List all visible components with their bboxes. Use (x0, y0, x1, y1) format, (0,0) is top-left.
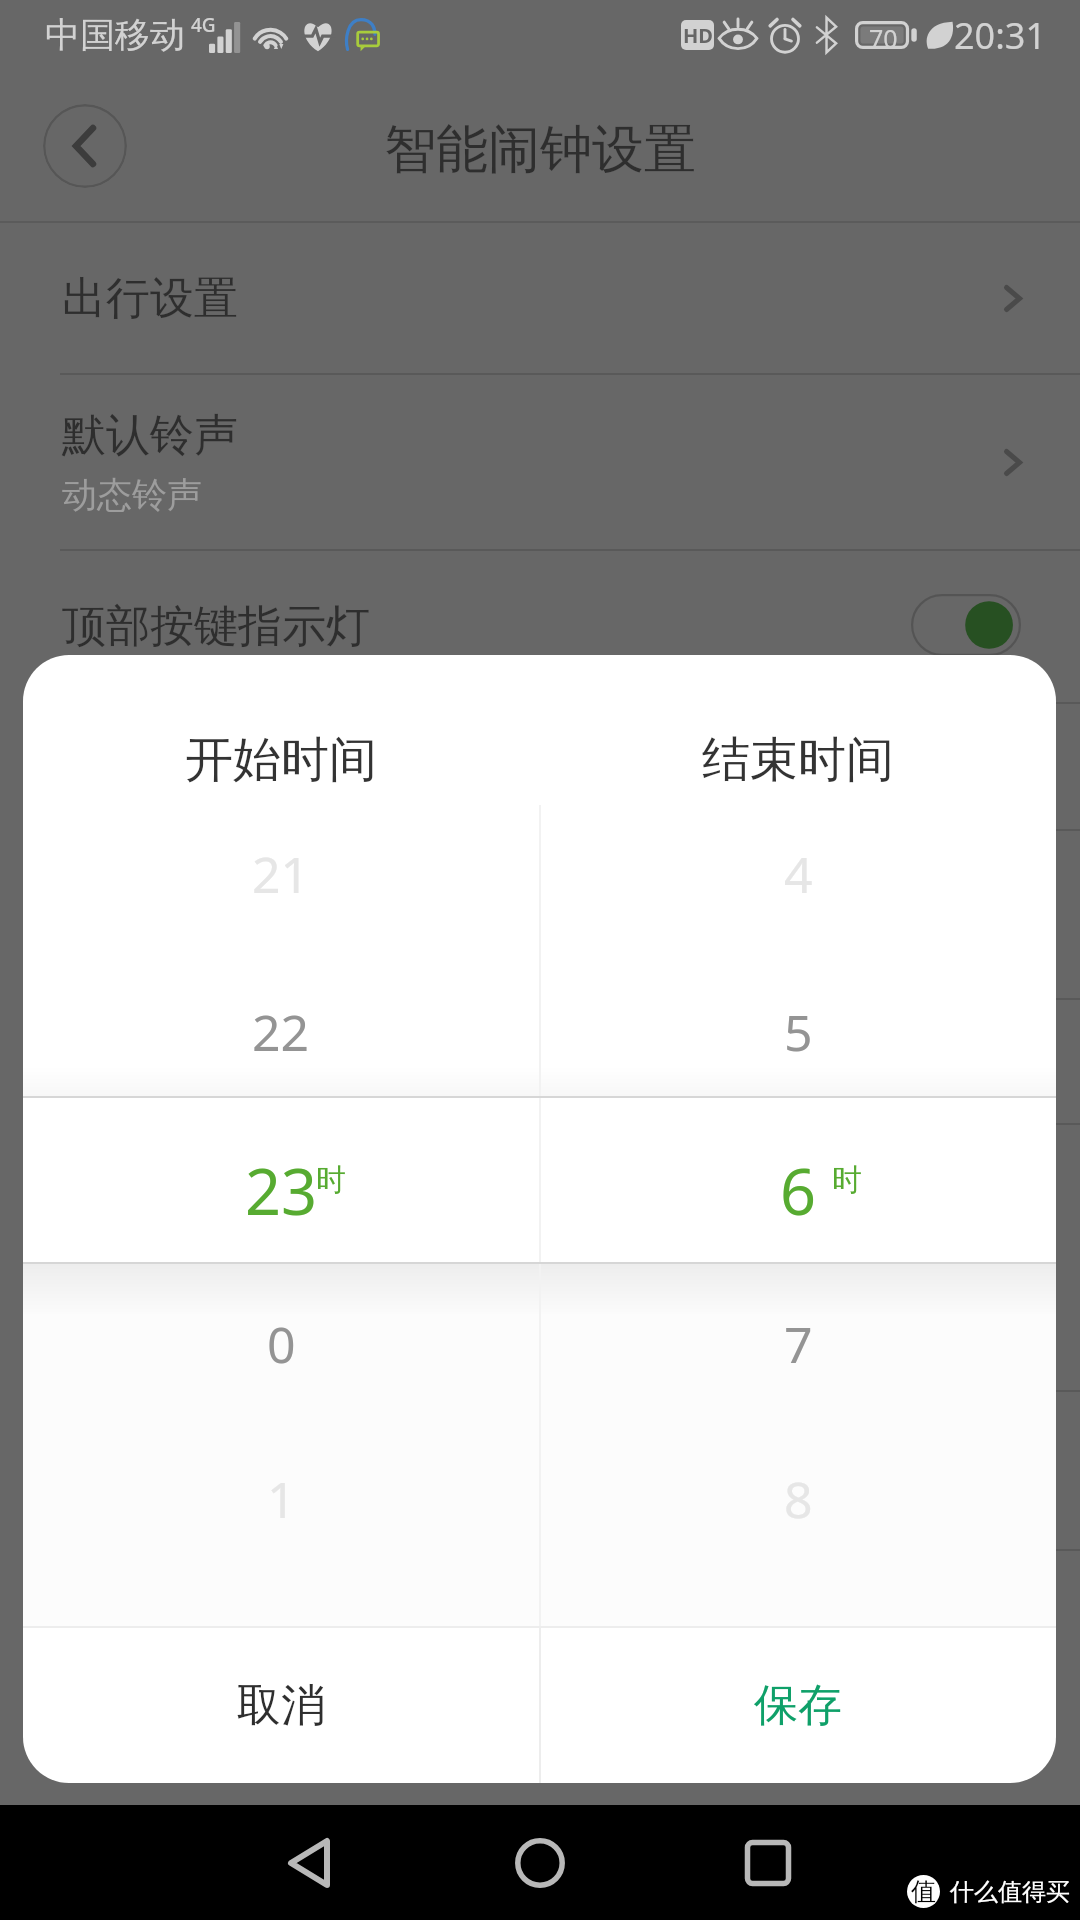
staticText: 5 (784, 998, 813, 1066)
staticText: 什么值得买 (950, 1877, 1070, 1907)
staticText: 8 (784, 1465, 813, 1533)
staticText: 顶部按键指示灯 (62, 599, 370, 654)
button[interactable]: 出行设置 (0, 223, 1080, 373)
staticText: 屏幕亮度 (62, 1230, 238, 1285)
staticText: 23 (245, 1148, 318, 1234)
button[interactable]: Home (500, 1805, 580, 1920)
staticText: 出行设置 (62, 271, 238, 326)
button[interactable]: 顶部按键指示灯 (0, 551, 1080, 702)
staticText: 中国移动 (45, 13, 185, 57)
staticText: 动态铃声 (62, 473, 202, 517)
staticText: 智能提醒 (62, 739, 238, 794)
staticText: 智能闹钟设置 (384, 117, 696, 183)
button[interactable]: 固件升级 (0, 1551, 1080, 1711)
staticText: 22 (252, 998, 310, 1066)
button[interactable]: 屏幕亮度 (0, 1125, 1080, 1390)
staticText: 4 (784, 840, 813, 908)
button[interactable]: 久坐提醒 (0, 831, 1080, 998)
button[interactable]: 抬腕亮屏 (0, 1000, 1080, 1123)
staticText: 7 (784, 1310, 813, 1378)
button[interactable]: 保存 (540, 1628, 1056, 1783)
staticText: 1 (267, 1465, 296, 1533)
staticText: 4G (191, 12, 216, 38)
button[interactable]: 智能提醒 (0, 704, 1080, 829)
staticText: 0 (267, 1310, 296, 1378)
staticText: 固件升级 (62, 1604, 238, 1659)
button[interactable]: Recent apps (728, 1805, 808, 1920)
button[interactable]: 消息推送 (0, 1392, 1080, 1549)
button[interactable]: 默认铃声 (0, 375, 1080, 549)
staticText: 70 (869, 21, 898, 49)
staticText: 保存 (754, 1678, 842, 1733)
staticText: 6 (780, 1148, 817, 1234)
button[interactable]: Back (269, 1805, 349, 1920)
staticText: HD (683, 22, 713, 49)
button[interactable]: 取消 (23, 1628, 539, 1783)
staticText: 取消 (237, 1678, 325, 1733)
staticText: 21 (252, 840, 310, 908)
staticText: 时 (316, 1161, 346, 1199)
staticText: 默认铃声 (62, 408, 238, 463)
staticText: 开始时间 (185, 730, 377, 790)
staticText: 结束时间 (702, 730, 894, 790)
staticText: 时 (832, 1161, 862, 1199)
staticText: 20:31 (954, 11, 1047, 60)
button[interactable]: Back (43, 104, 127, 188)
staticText: 值 (911, 1876, 936, 1907)
button[interactable]: Toggle switch (911, 594, 1021, 656)
